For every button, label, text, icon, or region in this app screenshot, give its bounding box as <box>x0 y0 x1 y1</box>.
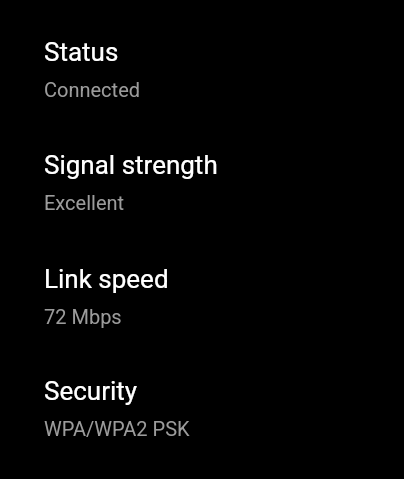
staticText: 72 Mbps <box>44 305 122 328</box>
staticText: Status <box>44 37 119 67</box>
staticText: Security <box>44 376 138 406</box>
button[interactable]: Security <box>0 376 404 479</box>
staticText: Excellent <box>44 191 125 214</box>
staticText: Signal strength <box>44 150 218 180</box>
button[interactable]: Status <box>0 0 404 150</box>
button[interactable]: Link speed <box>0 264 404 376</box>
staticText: Connected <box>44 78 141 101</box>
staticText: WPA/WPA2 PSK <box>44 417 190 440</box>
staticText: Link speed <box>44 264 169 294</box>
button[interactable]: Signal strength <box>0 150 404 264</box>
